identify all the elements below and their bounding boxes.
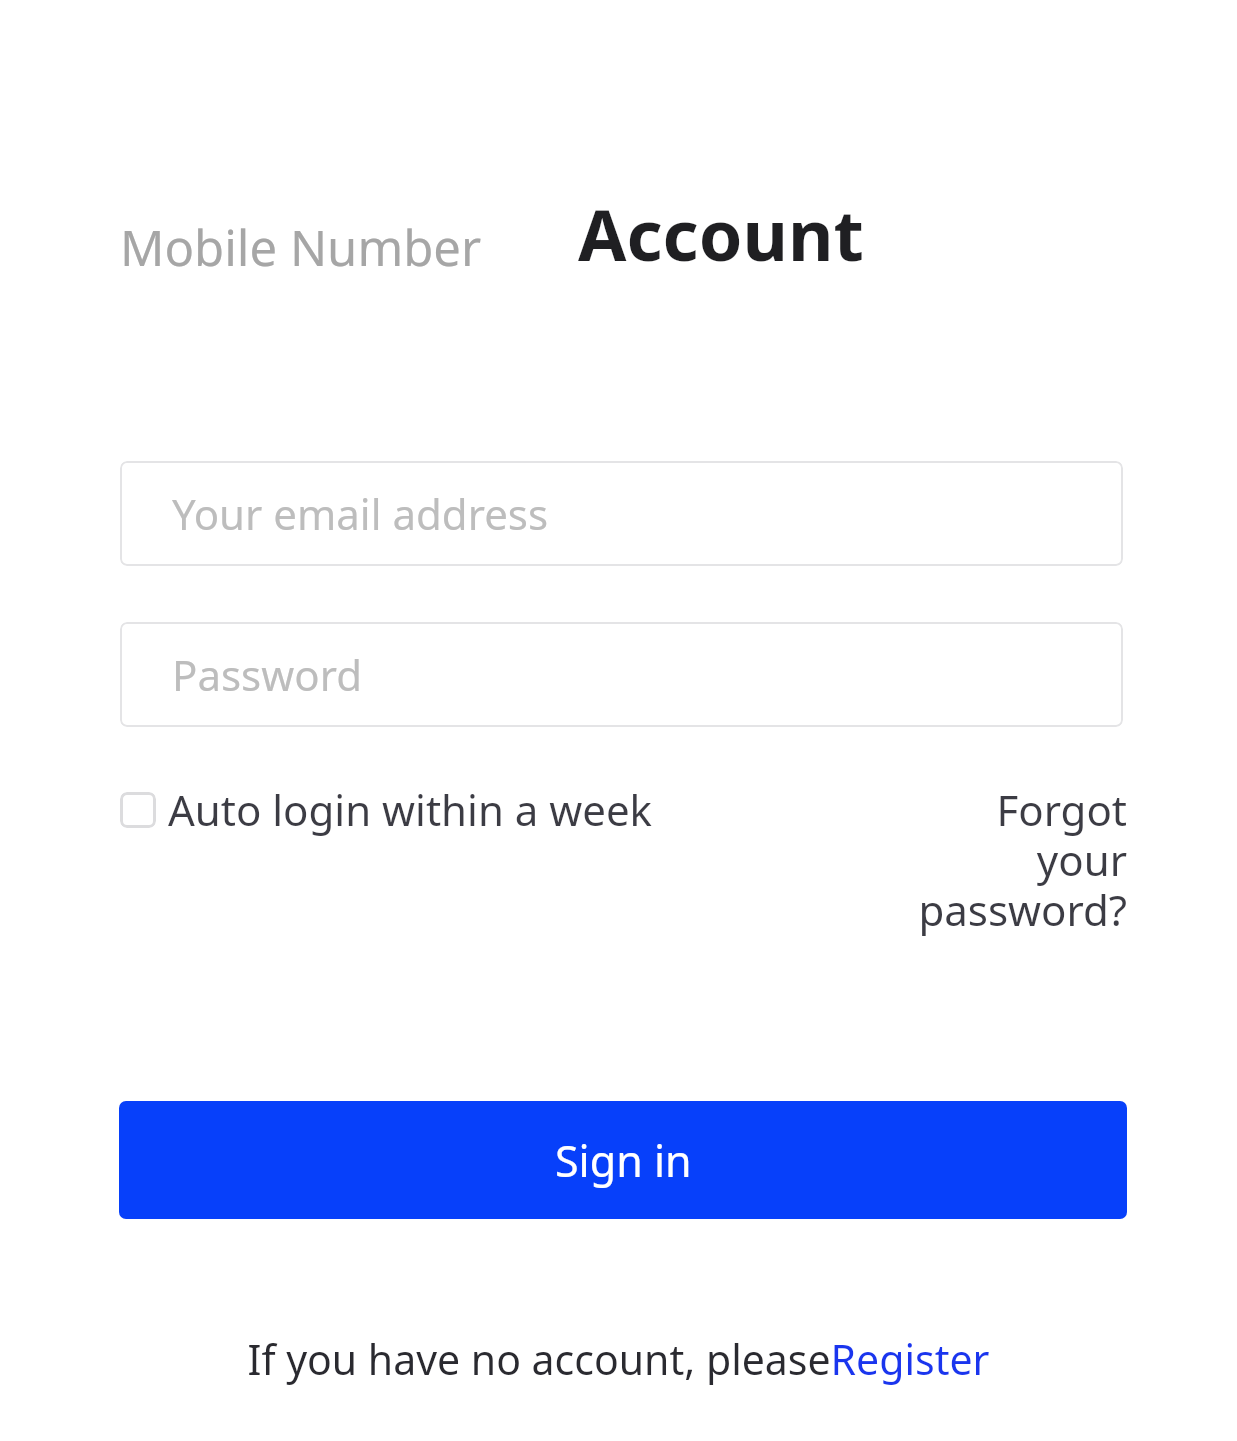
button[interactable]: Forgot your password? [912,781,1127,939]
staticText: Sign in [555,1131,692,1190]
button[interactable]: Auto login within a week [120,781,653,838]
button[interactable]: Mobile Number [120,214,482,281]
button[interactable]: Account [578,186,864,281]
button[interactable]: Password [120,622,1123,727]
staticText: Auto login within a week [168,781,653,838]
staticText: Mobile Number [120,214,482,281]
staticText: Account [578,186,864,281]
staticText: Your email address [172,485,549,542]
button[interactable]: Your email address [120,461,1123,566]
staticText: If you have no account, pleaseRegister [247,1331,990,1387]
button[interactable]: If you have no account, pleaseRegister [247,1331,990,1387]
staticText: Password [172,646,362,703]
button[interactable]: Sign in [119,1101,1127,1219]
staticText: Forgot your password? [912,781,1127,939]
